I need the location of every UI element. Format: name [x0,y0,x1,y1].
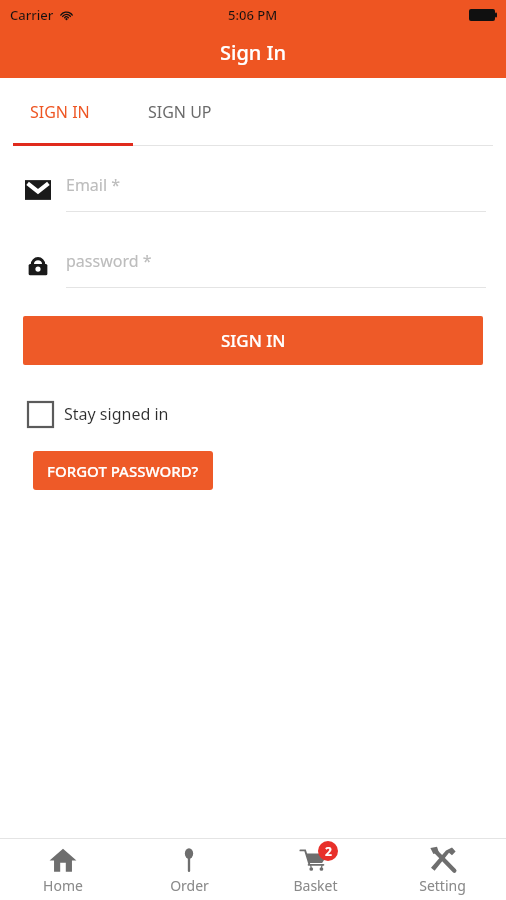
staticText: 2 [325,843,332,859]
other: Order [176,847,202,873]
button[interactable]: Basket [252,839,379,900]
button[interactable]: SIGN IN [23,316,483,365]
staticText: Stay signed in [64,403,169,425]
staticText: Basket [293,876,338,895]
button[interactable]: Order [126,839,252,900]
button[interactable]: Setting [379,839,506,900]
other: Basket [299,845,333,875]
button[interactable]: Home [0,839,126,900]
staticText: Order [170,876,209,895]
other: Setting [428,845,458,875]
button[interactable]: SIGN IN [0,78,120,146]
staticText: FORGOT PASSWORD? [47,461,199,481]
button[interactable]: SIGN UP [120,78,240,146]
staticText: Carrier [10,6,54,24]
staticText: Email * [66,174,121,196]
staticText: Home [43,876,83,895]
staticText: password * [66,250,152,272]
staticText: Sign In [220,39,287,66]
staticText: SIGN UP [148,101,212,123]
staticText: SIGN IN [30,101,90,123]
staticText: SIGN IN [221,329,286,352]
button[interactable]: FORGOT PASSWORD? [33,451,213,490]
staticText: Setting [419,876,466,895]
staticText: 5:06 PM [228,6,278,24]
button[interactable]: Stay signed in [28,399,169,429]
other: Home [49,846,77,874]
